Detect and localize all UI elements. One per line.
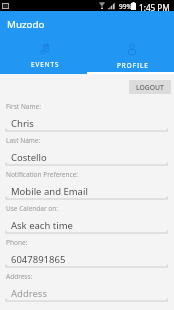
staticText: 1:45 PM	[139, 2, 170, 13]
staticText: Ask each time	[11, 219, 73, 232]
staticText: LOGOUT	[136, 83, 164, 92]
staticText: EVENTS	[31, 60, 60, 69]
staticText: Muzodo	[7, 18, 45, 31]
staticText: Last Name:	[6, 136, 41, 145]
staticText: Address:	[6, 272, 33, 281]
staticText: 6047891865	[11, 253, 66, 266]
staticText: Use Calendar on:	[6, 204, 59, 213]
staticText: 99%	[119, 2, 132, 11]
staticText: Notification Preference:	[6, 170, 79, 179]
staticText: Chris	[11, 117, 34, 130]
button[interactable]: EVENTS	[0, 33, 87, 74]
staticText: Phone:	[6, 238, 28, 247]
staticText: Address	[11, 287, 47, 300]
staticText: First Name:	[6, 102, 41, 111]
button[interactable]: LOGOUT	[129, 80, 171, 94]
staticText: Costello	[11, 151, 47, 164]
staticText: PROFILE	[117, 61, 149, 70]
staticText: Mobile and Email	[11, 185, 88, 198]
button[interactable]: PROFILE	[87, 33, 174, 74]
